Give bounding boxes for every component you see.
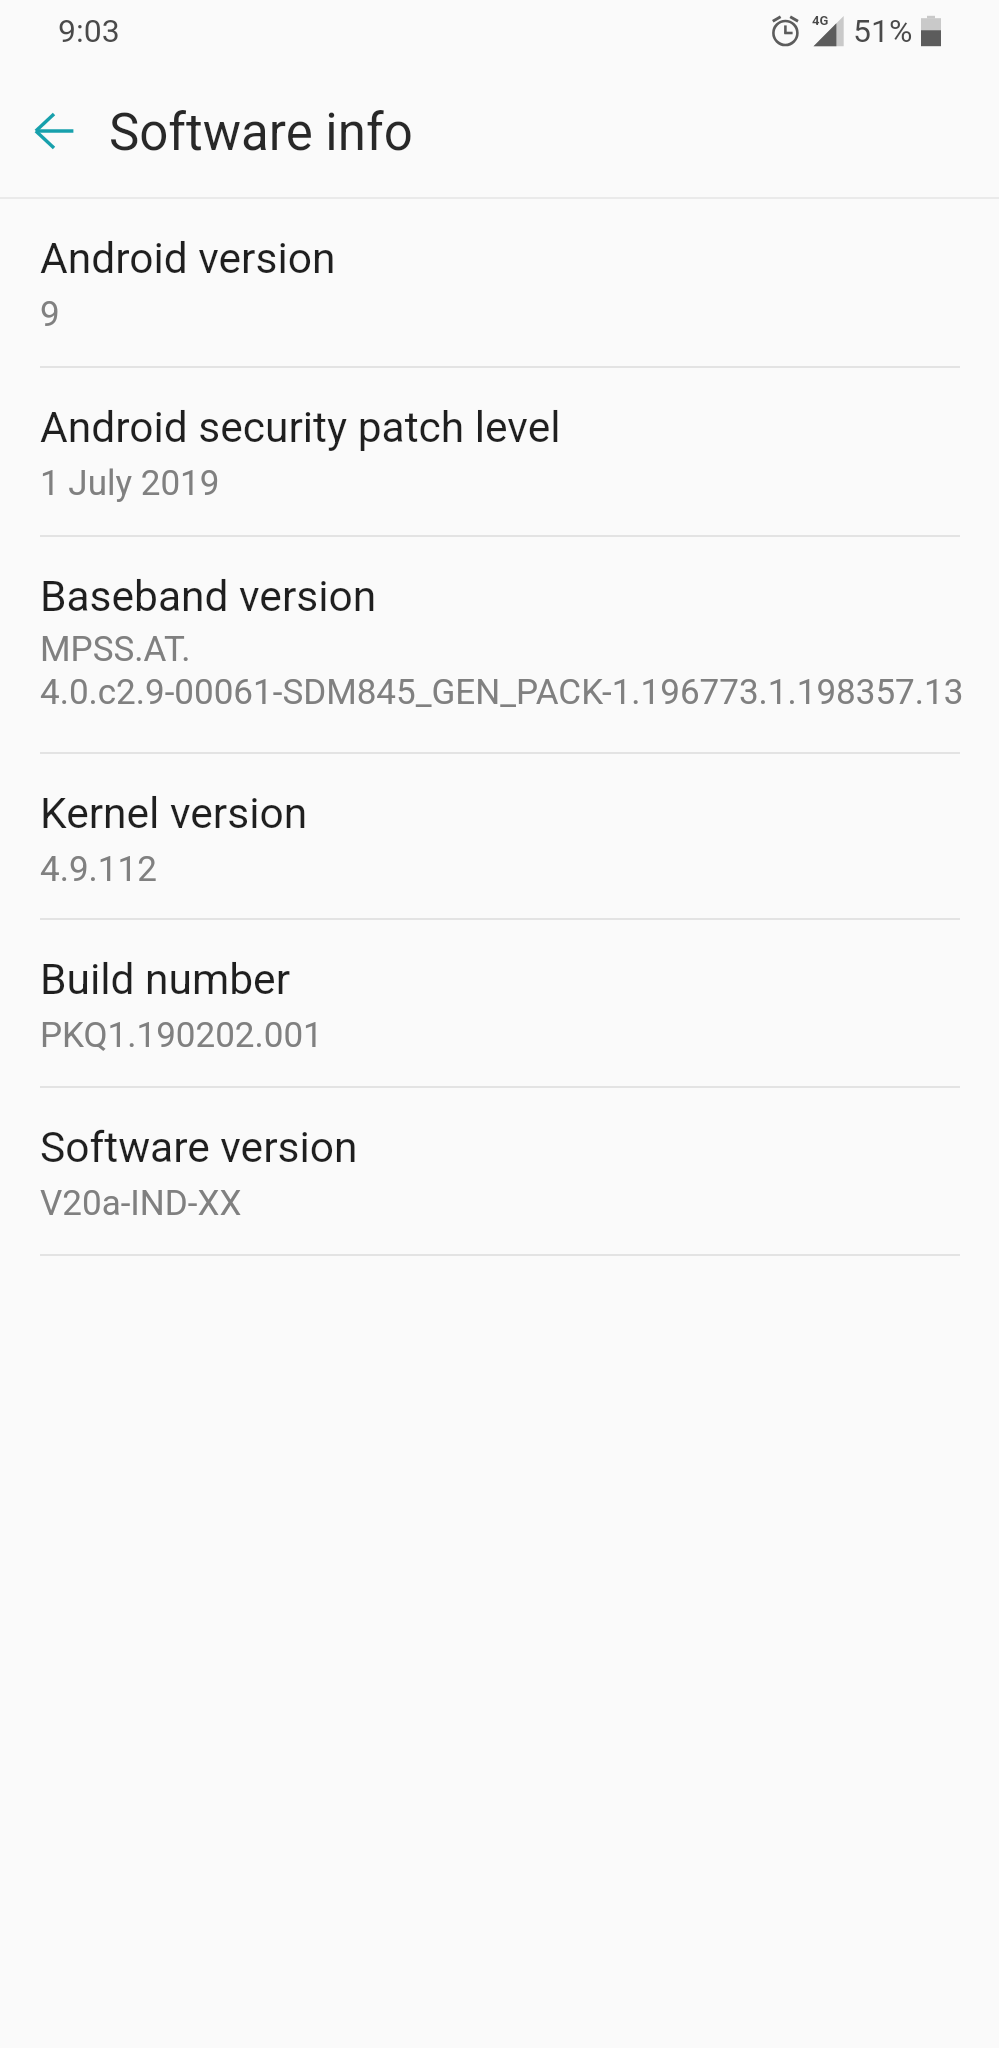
staticText: 4G: [812, 13, 829, 28]
staticText: MPSS.AT.: [40, 629, 191, 670]
staticText: Baseband version: [40, 572, 377, 622]
staticText: V20a-IND-XX: [40, 1183, 242, 1224]
button[interactable]: Build number: [0, 920, 999, 1088]
button[interactable]: Android version: [0, 199, 999, 368]
staticText: Build number: [40, 955, 291, 1005]
staticText: 4.0.c2.9-00061-SDM845_GEN_PACK-1.196773.…: [40, 672, 964, 713]
button[interactable]: Android security patch level: [0, 368, 999, 537]
staticText: 4.9.112: [40, 849, 157, 890]
staticText: Android version: [40, 234, 336, 284]
staticText: Kernel version: [40, 789, 308, 839]
button[interactable]: Navigate up: [0, 66, 110, 195]
button[interactable]: Kernel version: [0, 754, 999, 920]
staticText: 9:03: [58, 12, 120, 50]
staticText: 51%: [853, 12, 913, 50]
staticText: PKQ1.190202.001: [40, 1015, 323, 1056]
staticText: Software version: [40, 1123, 358, 1173]
staticText: 9: [40, 294, 60, 335]
staticText: Software info: [109, 103, 413, 163]
button[interactable]: Software version: [0, 1088, 999, 1256]
staticText: Android security patch level: [40, 403, 561, 453]
button[interactable]: Baseband version: [0, 537, 999, 754]
staticText: 1 July 2019: [40, 463, 220, 504]
